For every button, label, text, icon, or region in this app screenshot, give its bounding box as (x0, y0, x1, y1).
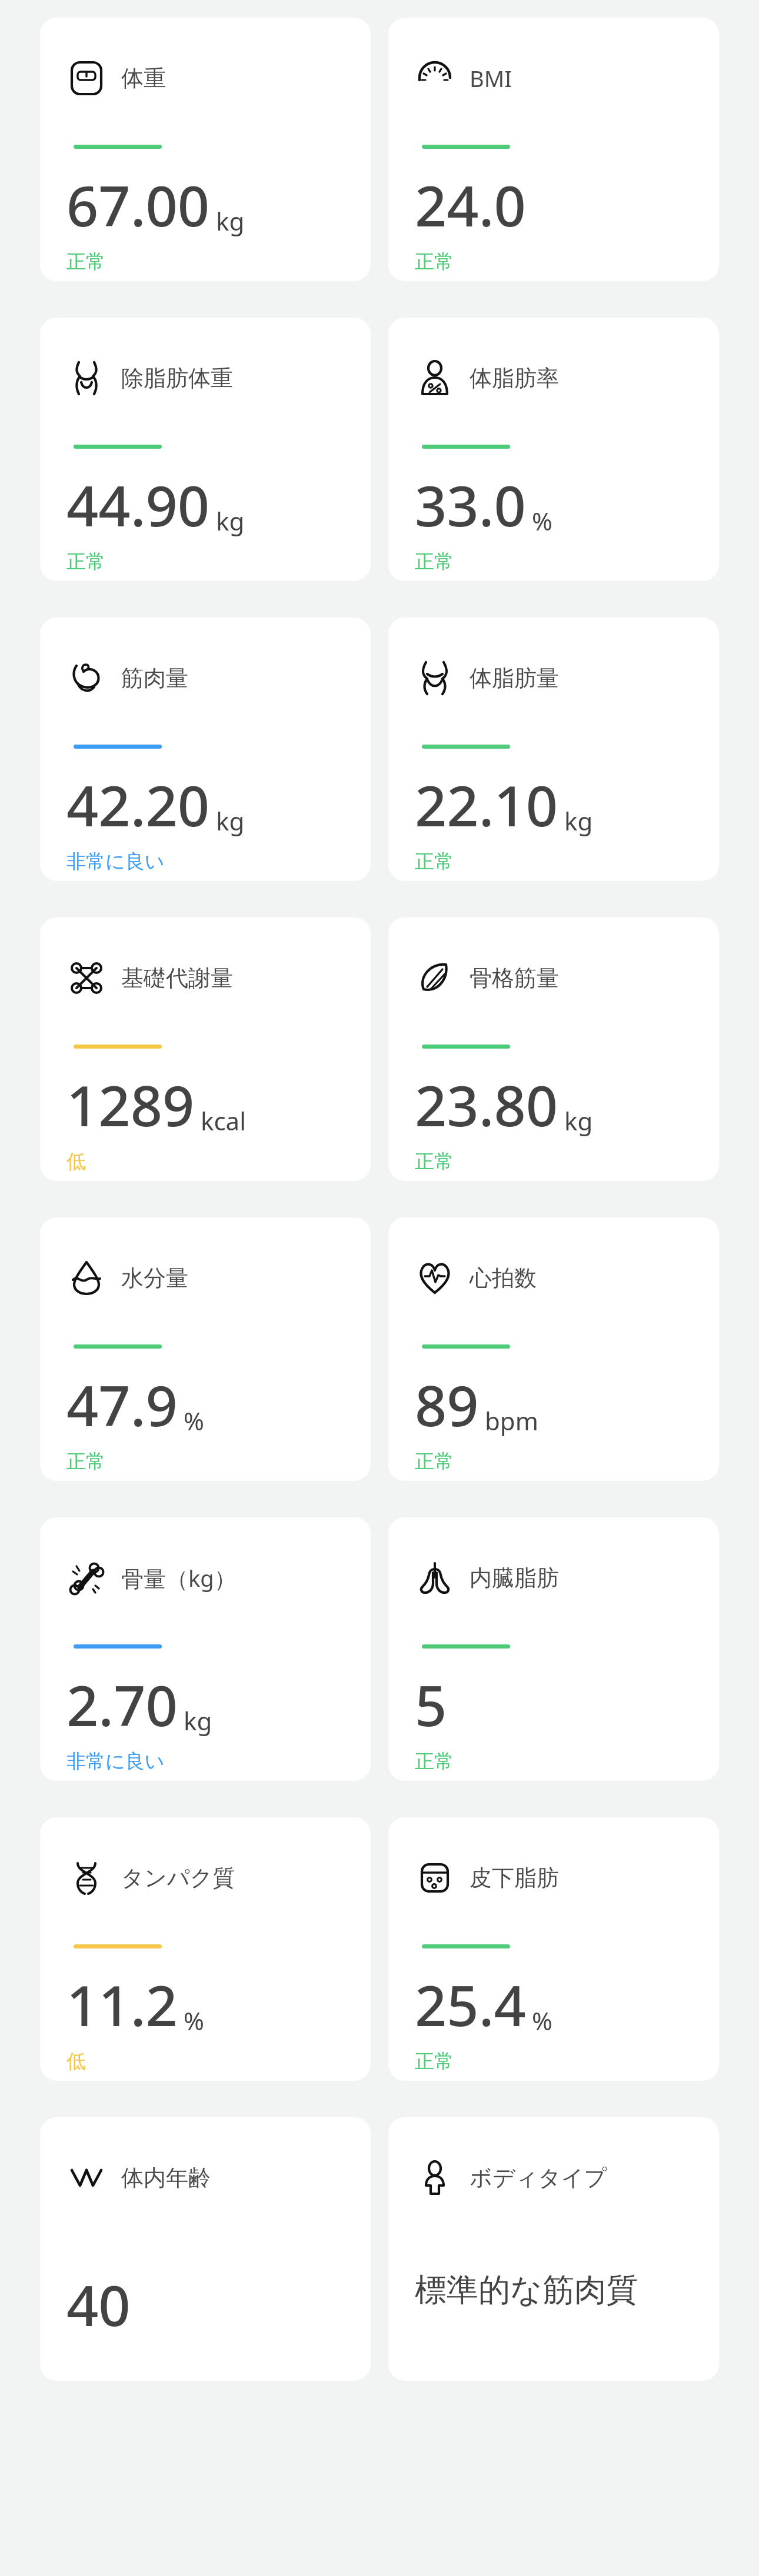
staticText: kg (216, 504, 245, 538)
staticText: 5 (415, 1666, 447, 1742)
staticText: 正常 (415, 2049, 454, 2074)
staticText: 正常 (415, 1149, 454, 1174)
staticText: 23.80 (415, 1066, 558, 1142)
staticText: ボディタイプ (470, 2164, 607, 2192)
staticText: 体重 (121, 64, 166, 92)
staticText: 骨量（kg） (121, 1563, 237, 1593)
staticText: 標準的な筋肉質 (415, 2270, 638, 2310)
staticText: 非常に良い (66, 849, 165, 874)
staticText: 低 (66, 1149, 86, 1174)
staticText: % (532, 504, 552, 538)
button[interactable]: 骨量（kg） (40, 1517, 371, 1781)
staticText: kg (216, 204, 245, 238)
staticText: 1289 (66, 1066, 195, 1142)
button[interactable]: BMI (388, 18, 719, 281)
staticText: % (184, 1404, 204, 1437)
button[interactable]: 筋肉量 (40, 618, 371, 881)
staticText: 基礎代謝量 (121, 964, 233, 992)
staticText: BMI (470, 63, 512, 94)
staticText: 67.00 (66, 166, 210, 242)
staticText: 44.90 (66, 466, 210, 542)
staticText: 正常 (415, 249, 454, 274)
button[interactable]: 皮下脂肪 (388, 1817, 719, 2081)
staticText: 40 (66, 2266, 131, 2342)
button[interactable]: 除脂肪体重 (40, 318, 371, 581)
staticText: タンパク質 (121, 1864, 235, 1892)
staticText: 正常 (415, 1449, 454, 1474)
staticText: 正常 (66, 1449, 105, 1474)
staticText: 非常に良い (66, 1749, 165, 1774)
staticText: % (184, 2004, 204, 2037)
button[interactable]: 体内年齢 (40, 2117, 371, 2381)
staticText: bpm (485, 1404, 538, 1437)
button[interactable]: 基礎代謝量 (40, 917, 371, 1181)
staticText: 体脂肪率 (470, 364, 559, 392)
staticText: 内臓脂肪 (470, 1564, 559, 1592)
staticText: 24.0 (415, 166, 526, 242)
staticText: 心拍数 (470, 1264, 537, 1292)
staticText: kg (216, 804, 245, 837)
staticText: kg (564, 804, 593, 837)
staticText: 水分量 (121, 1264, 188, 1292)
staticText: 正常 (415, 1749, 454, 1774)
staticText: kg (564, 1104, 593, 1137)
button[interactable]: 体脂肪量 (388, 618, 719, 881)
staticText: 正常 (415, 549, 454, 574)
staticText: 25.4 (415, 1966, 526, 2042)
staticText: 皮下脂肪 (470, 1864, 559, 1892)
staticText: 11.2 (66, 1966, 178, 2042)
staticText: 89 (415, 1366, 479, 1442)
button[interactable]: 内臓脂肪 (388, 1517, 719, 1781)
staticText: kg (184, 1704, 212, 1737)
staticText: 47.9 (66, 1366, 178, 1442)
staticText: 正常 (66, 549, 105, 574)
staticText: 33.0 (415, 466, 526, 542)
staticText: 2.70 (66, 1666, 178, 1742)
staticText: % (532, 2004, 552, 2037)
staticText: 骨格筋量 (470, 964, 559, 992)
button[interactable]: 体重 (40, 18, 371, 281)
staticText: kcal (201, 1104, 246, 1137)
staticText: 低 (66, 2049, 86, 2074)
staticText: 正常 (66, 249, 105, 274)
staticText: 42.20 (66, 766, 210, 842)
button[interactable]: 骨格筋量 (388, 917, 719, 1181)
staticText: 22.10 (415, 766, 558, 842)
staticText: 体脂肪量 (470, 664, 559, 692)
button[interactable]: 体脂肪率 (388, 318, 719, 581)
button[interactable]: ボディタイプ (388, 2117, 719, 2381)
button[interactable]: 水分量 (40, 1217, 371, 1481)
button[interactable]: 心拍数 (388, 1217, 719, 1481)
staticText: 除脂肪体重 (121, 364, 233, 392)
staticText: 正常 (415, 849, 454, 874)
button[interactable]: タンパク質 (40, 1817, 371, 2081)
staticText: 体内年齢 (121, 2164, 211, 2192)
staticText: 筋肉量 (121, 664, 188, 692)
